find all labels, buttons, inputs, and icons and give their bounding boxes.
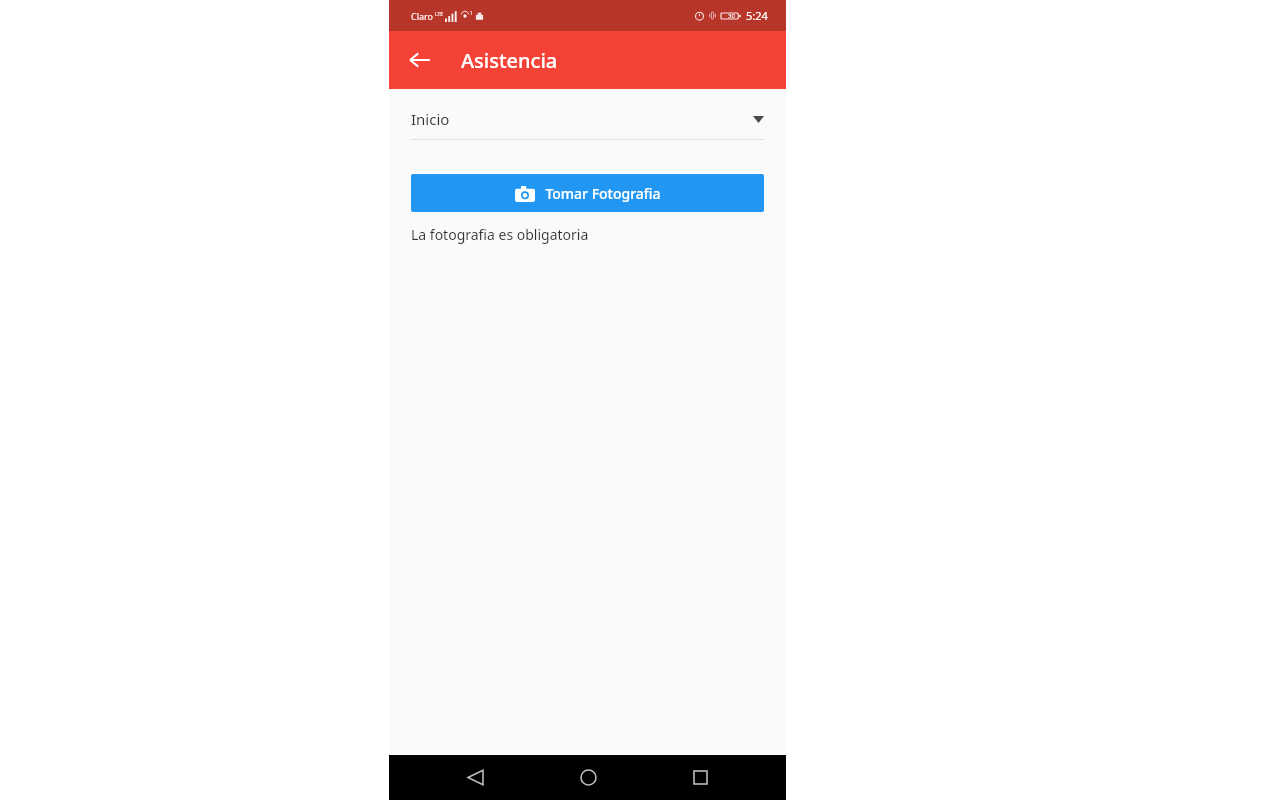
button[interactable]: Recent apps (673, 755, 727, 800)
button[interactable]: Inicio (411, 109, 764, 140)
staticText: Claro (411, 10, 434, 22)
staticText: 1 (470, 10, 473, 17)
staticText: Asistencia (461, 47, 558, 74)
staticText: Inicio (411, 109, 753, 129)
button[interactable]: Back (397, 37, 443, 83)
staticText: 30 (728, 12, 735, 20)
button[interactable]: Home (561, 755, 615, 800)
button[interactable]: Tomar Fotografia (411, 174, 764, 212)
staticText: LTE (435, 11, 444, 18)
button[interactable]: Back (448, 755, 502, 800)
staticText: La fotografia es obligatoria (411, 225, 589, 244)
staticText: Tomar Fotografia (545, 184, 661, 203)
staticText: 5:24 (746, 8, 768, 23)
